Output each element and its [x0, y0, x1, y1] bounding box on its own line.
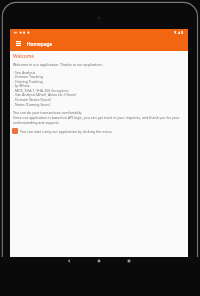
staticText: Welcome to our application. Thanks to ou… — [13, 62, 103, 67]
staticText: Welcome — [13, 53, 35, 60]
staticText: - Domain Tracking — [13, 74, 43, 79]
staticText: - Ip Whois — [13, 83, 30, 88]
staticText: - Site Analysis (Ahref, Alexa etc.) (Soo… — [13, 92, 77, 97]
staticText: You can start using our application by c… — [20, 129, 113, 134]
button[interactable]: Back — [54, 257, 84, 296]
button[interactable]: Menu — [13, 39, 23, 49]
staticText: - Domain Notice (Soon) — [13, 97, 51, 102]
staticText: - MD5, SHA-1, SHA-256 Encryption — [13, 88, 69, 93]
button[interactable]: Recents — [114, 257, 144, 296]
staticText: - Seo Analysis — [13, 70, 36, 75]
button[interactable]: Home — [84, 257, 114, 296]
staticText: - Notes (Coming Soon) — [13, 102, 50, 107]
staticText: You can do your transactions comfortably… — [13, 110, 180, 125]
staticText: - Hosting Tracking — [13, 79, 43, 84]
staticText: Homepage — [27, 41, 53, 48]
